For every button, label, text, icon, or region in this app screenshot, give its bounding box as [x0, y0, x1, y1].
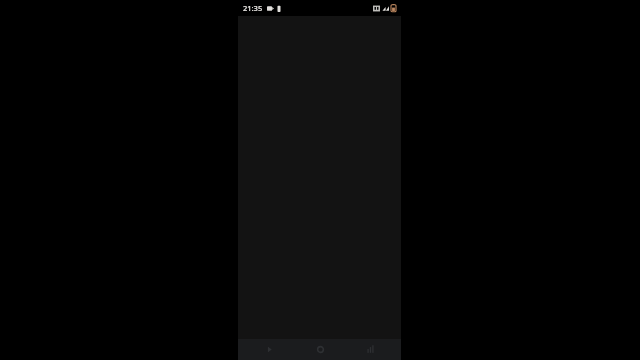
- button[interactable]: Home: [300, 339, 340, 360]
- staticText: 21:35: [243, 3, 263, 13]
